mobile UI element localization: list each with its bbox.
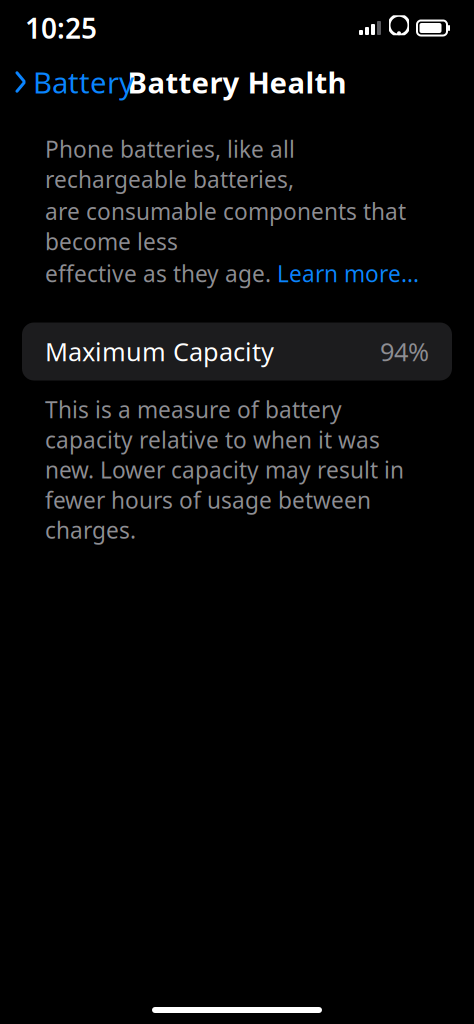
staticText: Battery Health — [127, 62, 346, 101]
staticText: Phone batteries, like all rechargeable b… — [45, 134, 295, 194]
staticText: Learn more... — [277, 258, 419, 288]
button[interactable]: Learn more... — [277, 258, 419, 288]
staticText: are consumable components that become le… — [45, 196, 406, 256]
staticText: Battery — [33, 62, 134, 101]
button[interactable]: Battery — [0, 56, 134, 107]
staticText: effective as they age. — [45, 258, 277, 288]
staticText: 10:25 — [25, 9, 97, 47]
staticText: This is a measure of battery capacity re… — [45, 394, 404, 545]
staticText: Maximum Capacity — [45, 335, 274, 368]
button[interactable]: Maximum Capacity — [22, 322, 452, 380]
staticText: 94% — [380, 335, 429, 368]
